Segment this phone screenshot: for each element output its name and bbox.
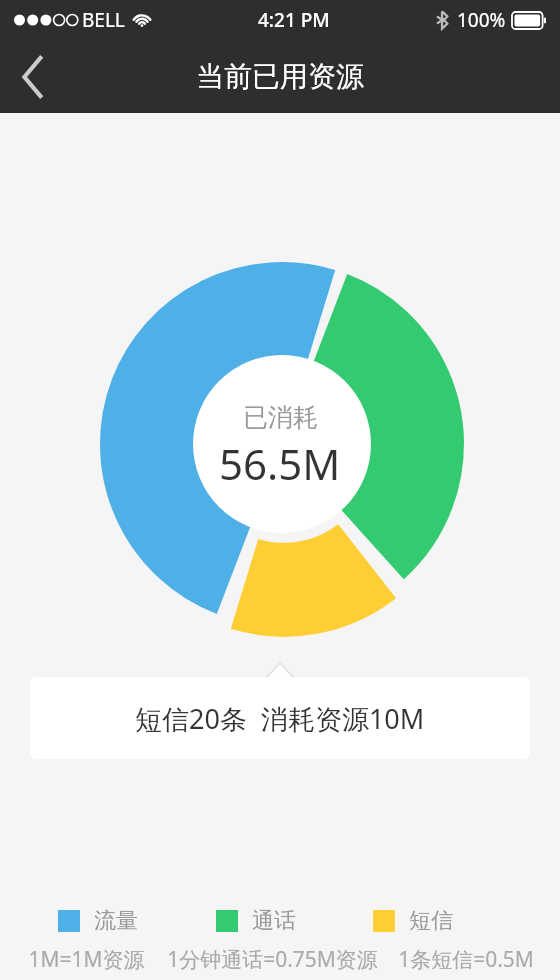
button[interactable]: 流量	[44, 907, 202, 935]
staticText: 当前已用资源	[196, 59, 364, 94]
button[interactable]: 通话	[202, 907, 359, 935]
staticText: 1分钟通话=0.75M资源	[161, 945, 384, 974]
staticText: 1M=1M资源	[12, 945, 161, 974]
staticText: 短信	[409, 907, 453, 935]
staticText: BELL	[82, 7, 125, 33]
staticText: 流量	[94, 907, 138, 935]
staticText: 1条短信=0.5M	[384, 945, 548, 974]
staticText: 100%	[457, 7, 506, 33]
staticText: 短信20条 消耗资源10M	[135, 700, 425, 737]
staticText: 已消耗	[243, 402, 318, 433]
button[interactable]: 短信	[359, 907, 516, 935]
button[interactable]: Back	[0, 45, 64, 109]
staticText: 通话	[252, 907, 296, 935]
staticText: 4:21 PM	[258, 7, 330, 33]
staticText: 56.5M	[219, 435, 341, 492]
button[interactable]: 短信20条 消耗资源10M	[30, 677, 530, 759]
